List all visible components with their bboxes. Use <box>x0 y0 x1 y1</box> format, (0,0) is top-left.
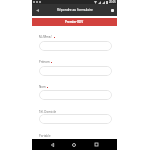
staticText: 20:05 <box>109 0 116 4</box>
staticText: Répondre au formulaire <box>57 8 93 12</box>
staticText: Premier RDV <box>65 20 84 24</box>
button[interactable]: Back <box>32 5 42 15</box>
button[interactable]: More options <box>107 5 117 15</box>
button[interactable] <box>39 41 112 51</box>
button[interactable] <box>39 90 112 100</box>
button[interactable]: Home <box>68 139 80 150</box>
button[interactable]: Recent apps <box>90 139 102 150</box>
button[interactable]: Back <box>46 139 58 150</box>
staticText: Nom <box>39 85 46 89</box>
staticText: Tél. Domicile <box>39 110 57 114</box>
staticText: Prénom <box>39 60 50 64</box>
button[interactable]: Premier RDV <box>32 18 117 26</box>
staticText: M./Mme/. <box>39 35 53 39</box>
button[interactable] <box>39 66 112 76</box>
staticText: Portable <box>39 134 51 138</box>
button[interactable] <box>39 114 112 124</box>
